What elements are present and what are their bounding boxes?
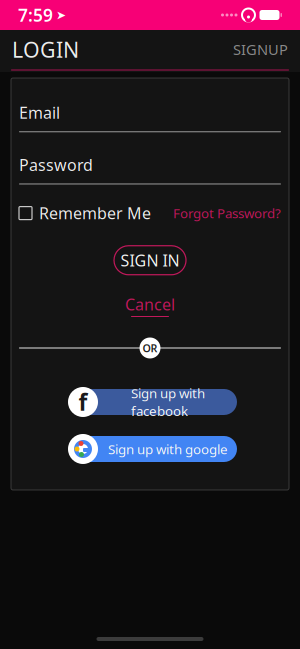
button[interactable]: SIGN IN [114, 246, 186, 275]
button[interactable]: f [63, 387, 237, 417]
staticText: OR [142, 341, 157, 355]
button[interactable]: SIGNUP [233, 40, 288, 59]
staticText: LOGIN [12, 35, 79, 63]
staticText: Email [19, 102, 60, 123]
button[interactable]: Remember Me [19, 202, 151, 224]
staticText: Sign up with facebook [131, 384, 205, 420]
button[interactable]: Sign up with google [63, 434, 237, 464]
staticText: SIGNUP [233, 40, 288, 59]
staticText: ➤ [56, 8, 66, 22]
staticText: Cancel [125, 294, 175, 315]
staticText: Password [19, 154, 93, 175]
staticText: SIGN IN [120, 250, 179, 271]
staticText: f [78, 387, 87, 417]
staticText: Sign up with google [108, 440, 228, 458]
button[interactable]: Forgot Password? [173, 204, 281, 222]
staticText: Remember Me [39, 202, 151, 224]
button[interactable]: Cancel [125, 294, 175, 317]
button[interactable]: LOGIN [12, 35, 79, 63]
staticText: Forgot Password? [173, 204, 281, 222]
staticText: 7:59 [18, 3, 53, 26]
